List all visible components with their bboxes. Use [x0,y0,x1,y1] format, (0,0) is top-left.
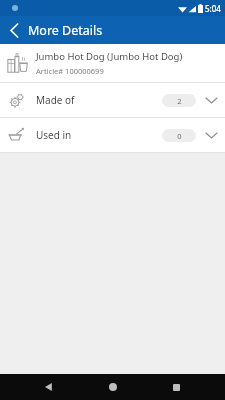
staticText: Used in [36,128,72,142]
button[interactable]: Recent apps [161,374,191,400]
staticText: More Details [28,22,103,39]
button[interactable]: Home [98,374,128,400]
button[interactable]: Back [34,374,64,400]
staticText: Made of [36,93,75,107]
button[interactable]: Used in [0,118,225,152]
button[interactable]: Made of [0,83,225,117]
staticText: Jumbo Hot Dog (Jumbo Hot Dog) [36,50,183,63]
staticText: Article# 100000699 [36,66,104,76]
button[interactable]: Back [0,16,28,44]
button[interactable]: Jumbo Hot Dog (Jumbo Hot Dog) [0,44,225,82]
staticText: 5:04 [205,3,221,14]
staticText: 2 [177,96,182,106]
staticText: 0 [177,131,182,141]
